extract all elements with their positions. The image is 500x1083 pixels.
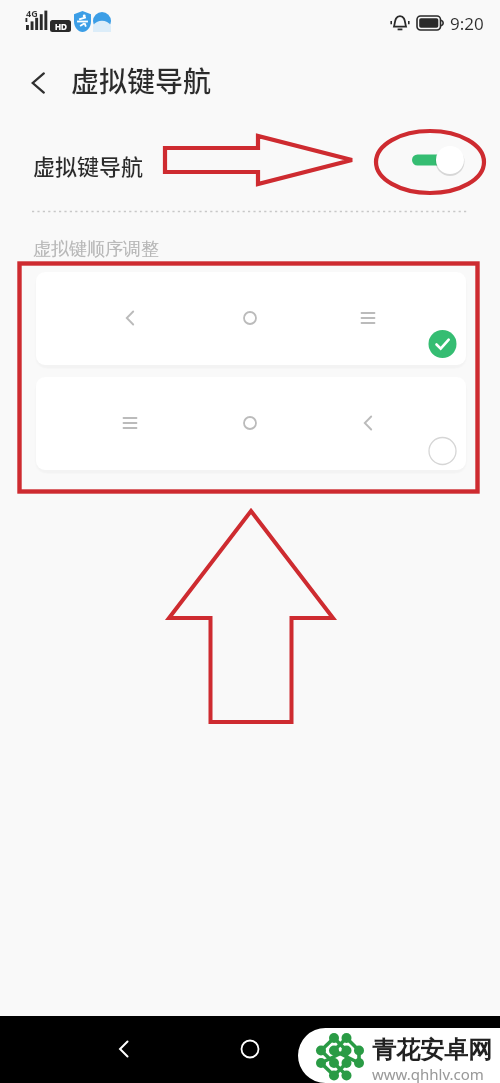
- staticText: 虚拟键导航: [33, 149, 144, 181]
- button[interactable]: Back: [100, 1025, 148, 1073]
- staticText: 青花安卓网: [372, 1035, 492, 1065]
- staticText: 4G: [26, 7, 38, 19]
- staticText: 虚拟键导航: [71, 60, 212, 101]
- staticText: 虚拟键顺序调整: [33, 238, 159, 261]
- button[interactable]: Home: [226, 1025, 274, 1073]
- button[interactable]: Reversed key order: [36, 377, 466, 470]
- button[interactable]: Toggle virtual key navigation: [410, 144, 466, 176]
- staticText: HD: [55, 21, 67, 32]
- button[interactable]: Back: [17, 61, 61, 105]
- staticText: 9:20: [450, 12, 484, 35]
- button[interactable]: Default key order: [36, 272, 466, 365]
- staticText: www.qhhlv.com: [372, 1064, 484, 1083]
